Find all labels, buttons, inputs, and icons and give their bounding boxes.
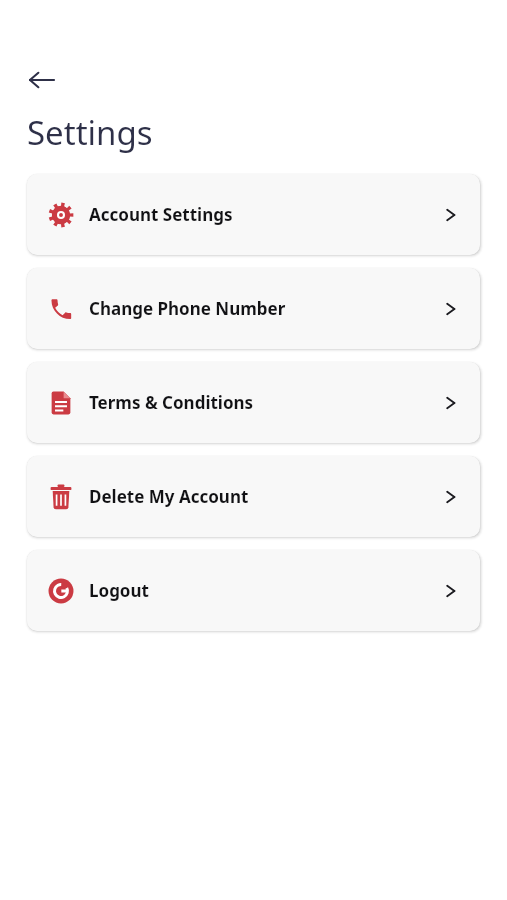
button[interactable]: Terms & Conditions xyxy=(27,362,480,443)
button[interactable]: Account Settings xyxy=(27,174,480,255)
button[interactable]: Logout xyxy=(27,550,480,631)
staticText: Delete My Account xyxy=(89,485,249,508)
staticText: Logout xyxy=(89,579,149,602)
staticText: Change Phone Number xyxy=(89,297,286,320)
button[interactable]: Change Phone Number xyxy=(27,268,480,349)
staticText: Settings xyxy=(27,110,153,155)
button[interactable]: Back xyxy=(18,56,66,104)
button[interactable]: Delete My Account xyxy=(27,456,480,537)
staticText: Account Settings xyxy=(89,203,233,226)
staticText: Terms & Conditions xyxy=(89,391,254,414)
